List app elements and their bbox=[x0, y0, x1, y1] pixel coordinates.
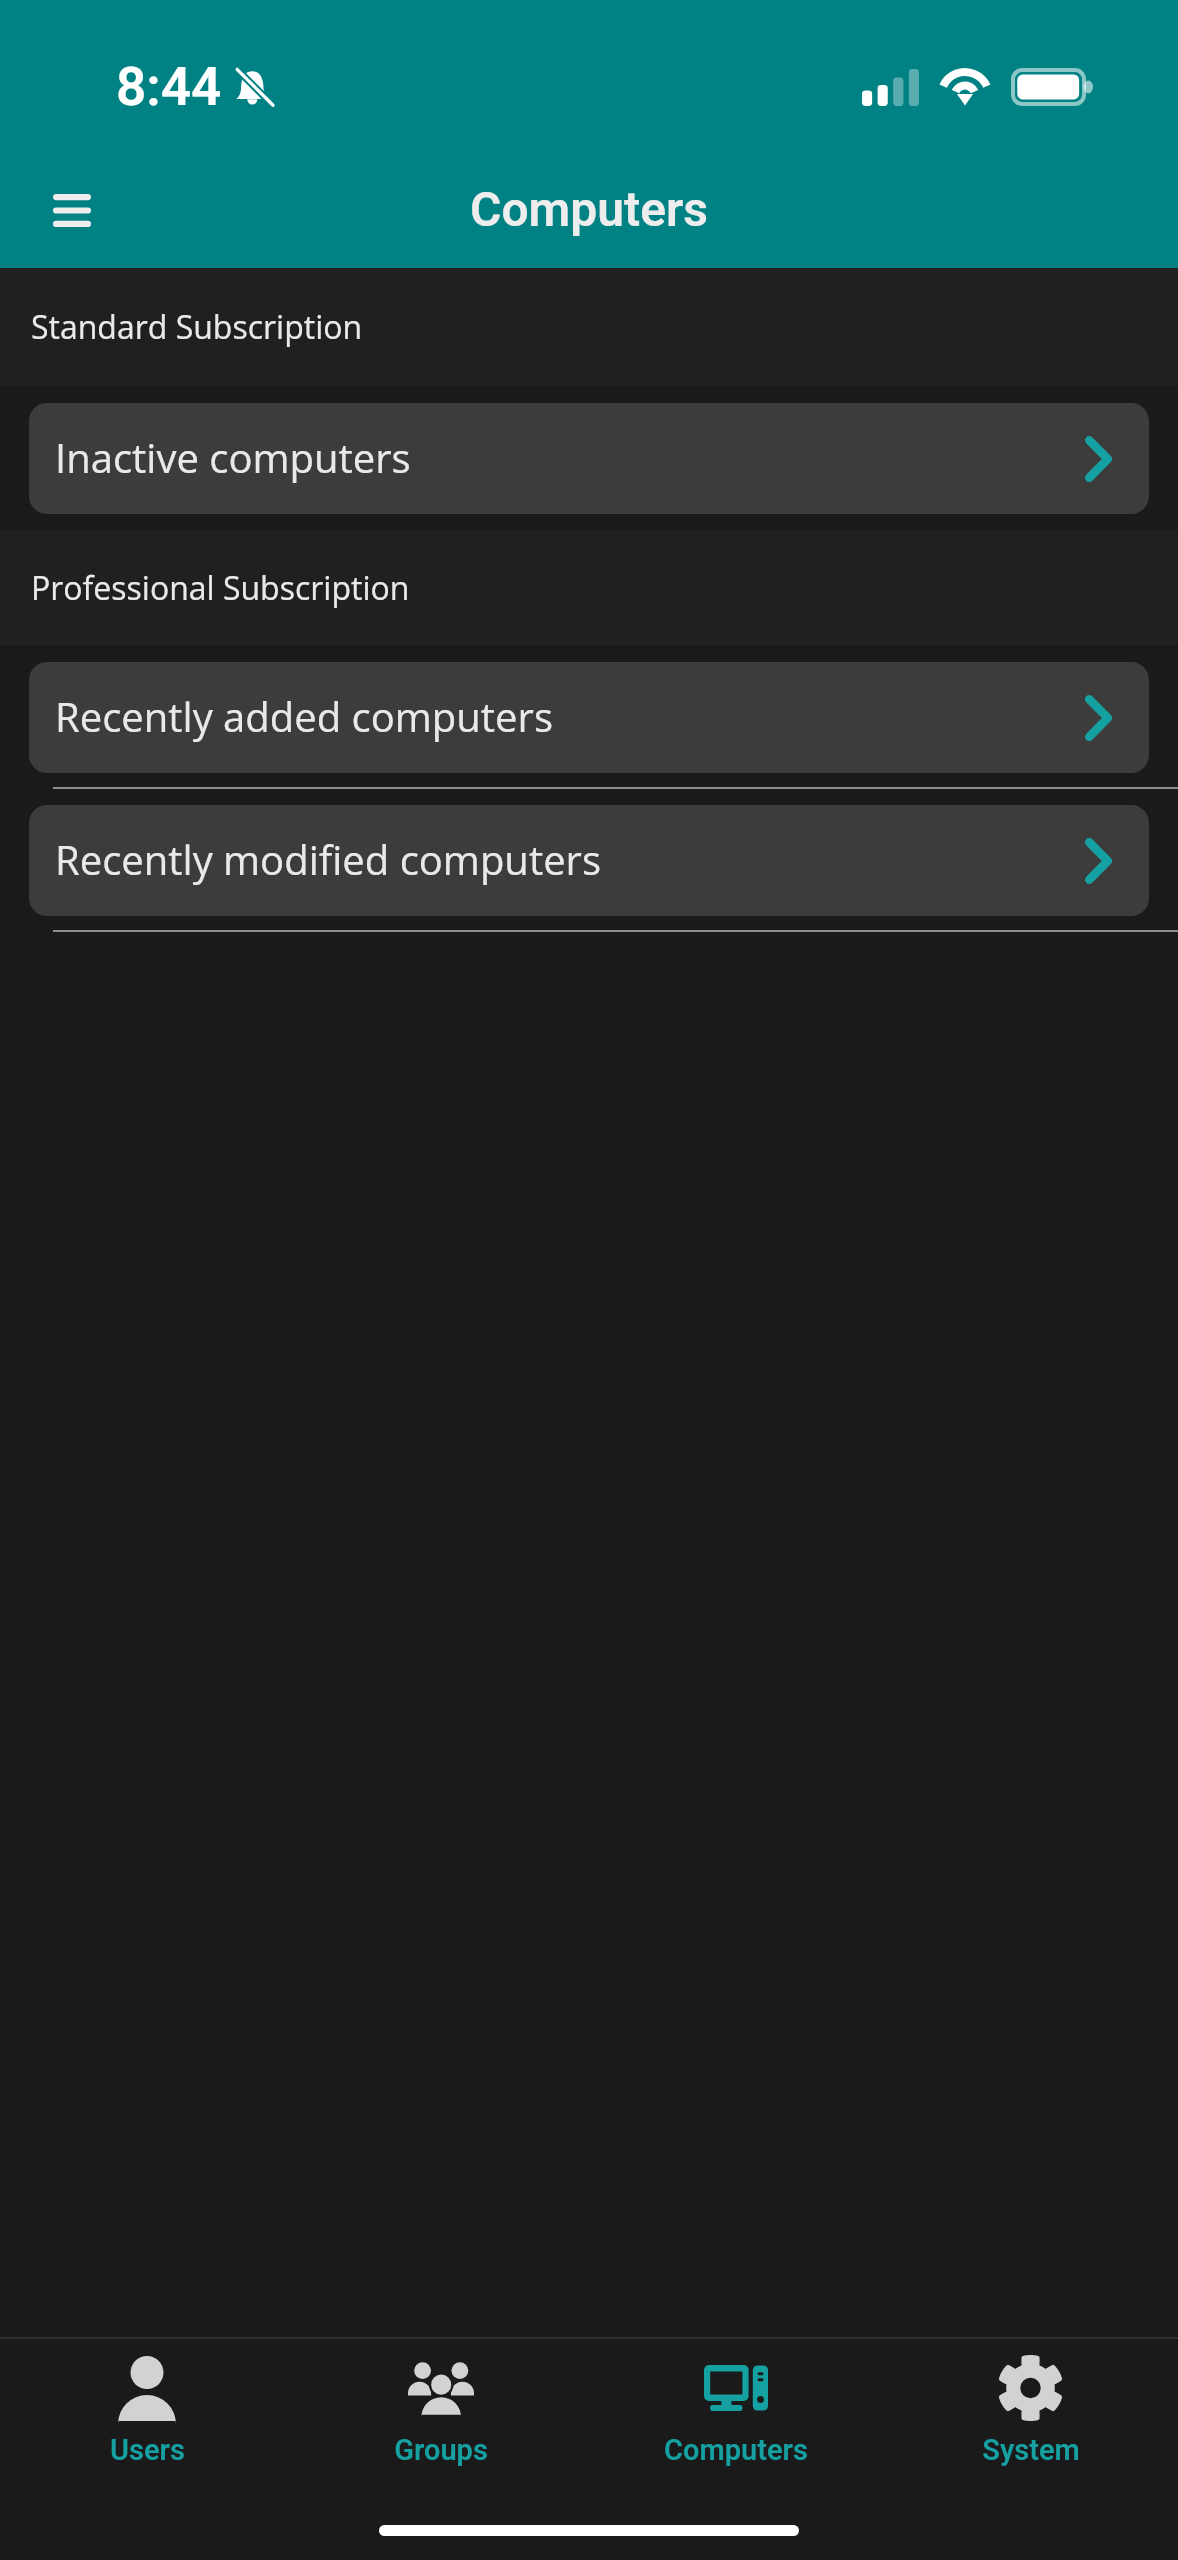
button[interactable]: Recently added computers bbox=[29, 662, 1149, 773]
staticText: 8:44 bbox=[116, 56, 222, 118]
staticText: Recently added computers bbox=[55, 689, 1085, 743]
staticText: System bbox=[982, 2433, 1080, 2467]
button[interactable]: Groups bbox=[294, 2339, 588, 2496]
button[interactable]: Users bbox=[0, 2339, 294, 2496]
staticText: Professional Subscription bbox=[31, 566, 410, 610]
button[interactable]: Open navigation menu bbox=[34, 172, 110, 248]
staticText: Recently modified computers bbox=[55, 832, 1085, 886]
staticText: Inactive computers bbox=[55, 430, 1085, 484]
staticText: Computers bbox=[664, 2433, 808, 2467]
staticText: Users bbox=[110, 2433, 185, 2467]
button[interactable]: Recently modified computers bbox=[29, 805, 1149, 916]
button[interactable]: Inactive computers bbox=[29, 403, 1149, 514]
button[interactable]: System bbox=[883, 2339, 1178, 2496]
staticText: Groups bbox=[394, 2433, 488, 2467]
staticText: Computers bbox=[470, 181, 708, 237]
button[interactable]: Computers bbox=[588, 2339, 883, 2496]
staticText: Standard Subscription bbox=[31, 305, 363, 349]
